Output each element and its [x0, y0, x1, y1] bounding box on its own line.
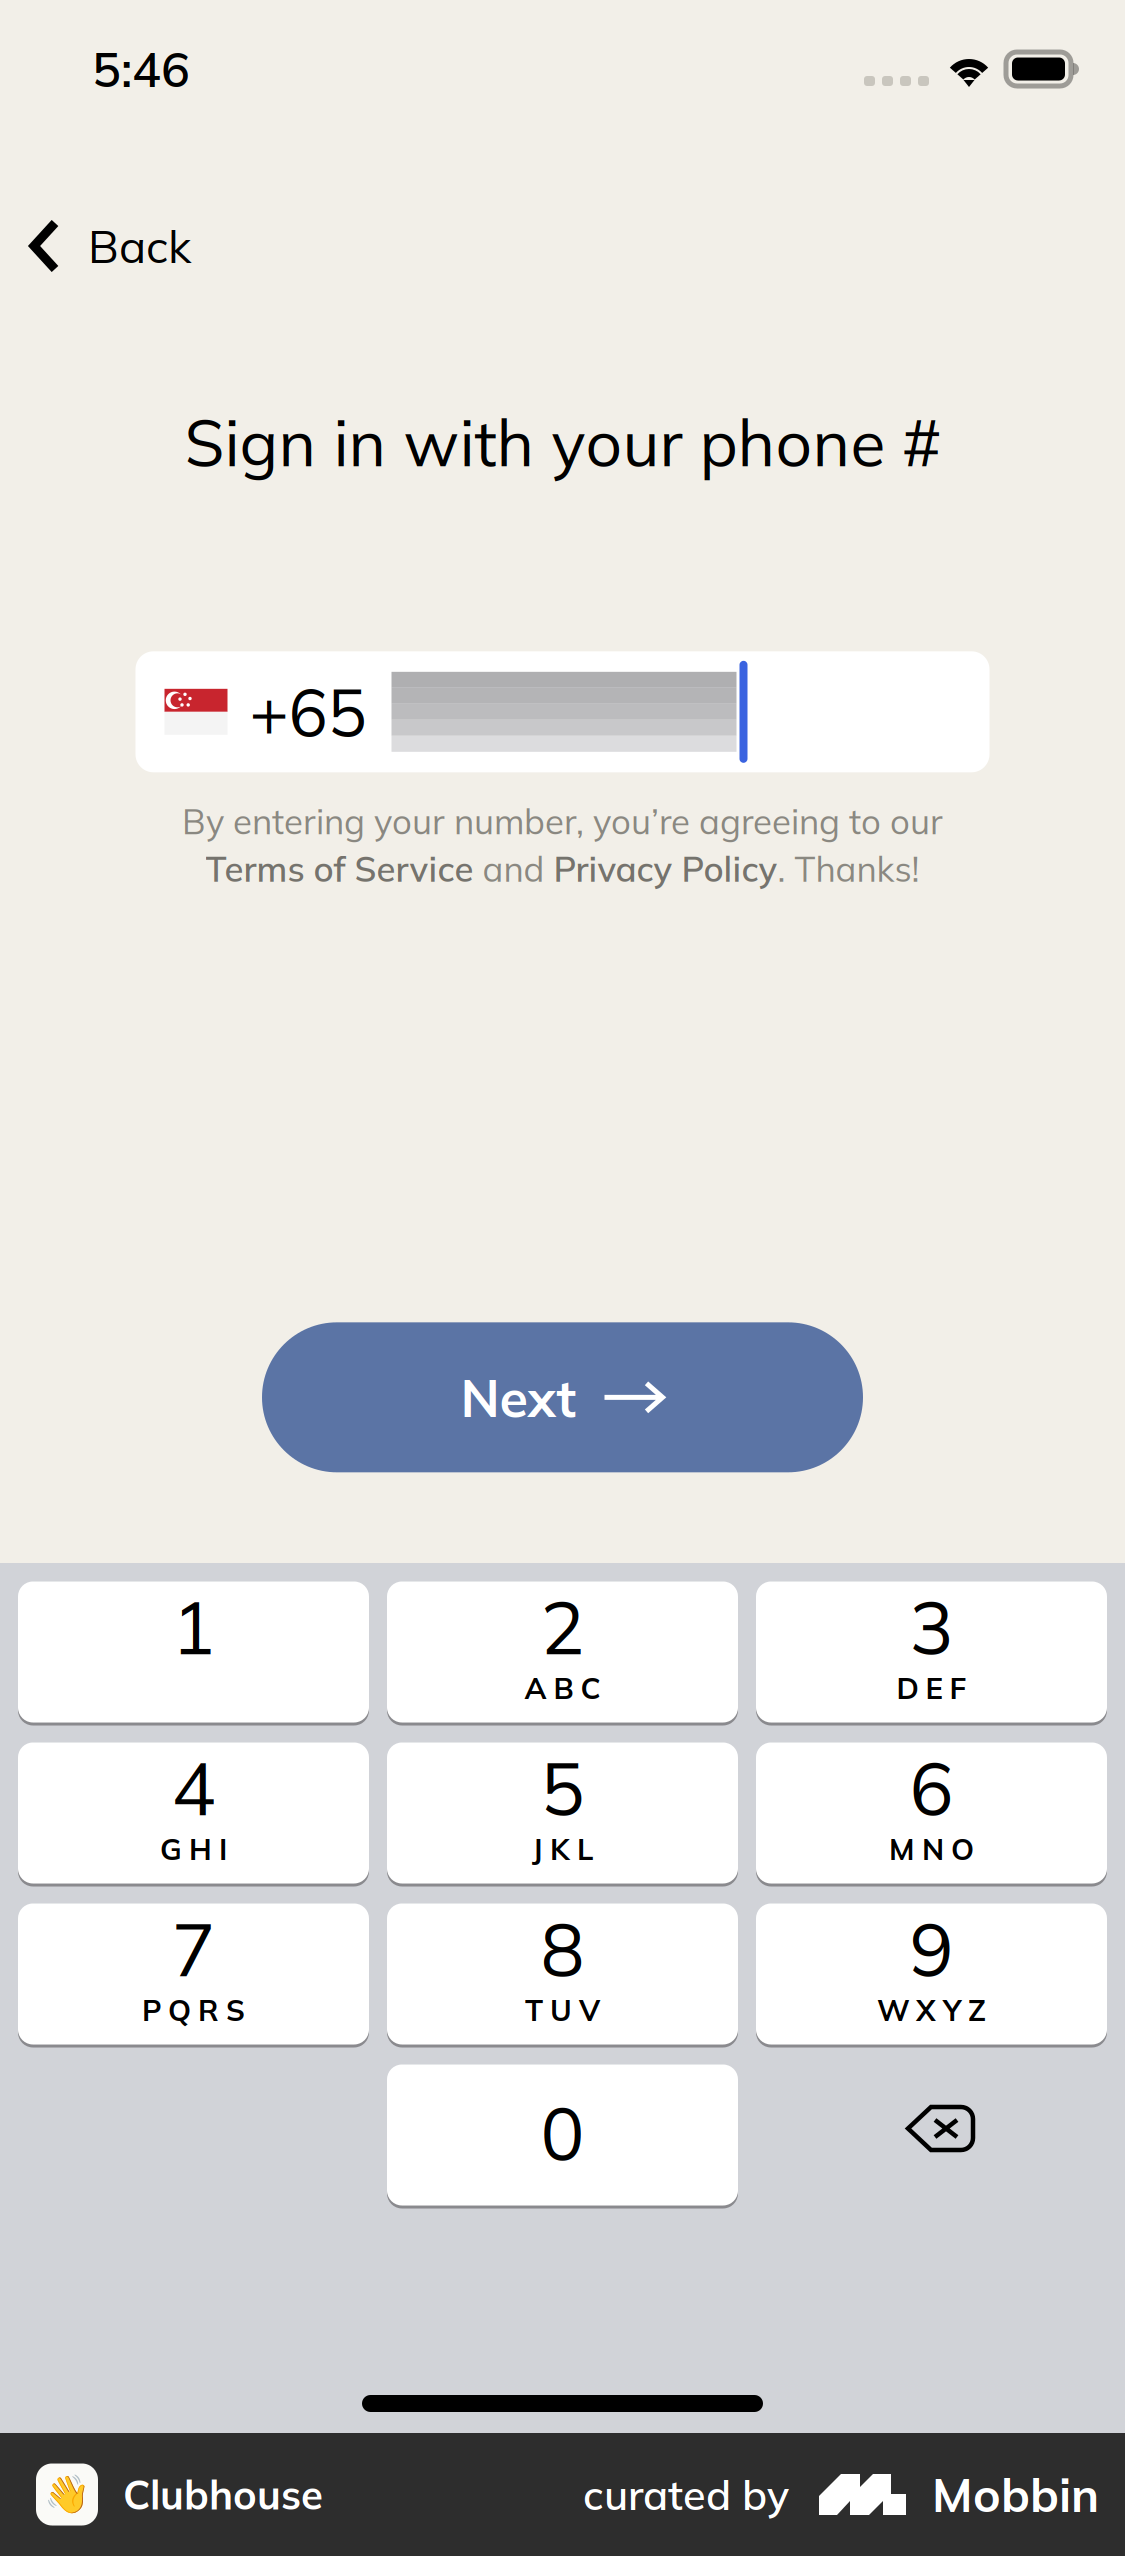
button[interactable]: Back [0, 138, 217, 354]
button[interactable]: 0 [387, 2063, 738, 2207]
button[interactable]: 1 [18, 1580, 369, 1724]
button[interactable]: 4 [18, 1741, 369, 1885]
staticText: Clubhouse [123, 2469, 323, 2520]
button[interactable]: 6 [756, 1741, 1107, 1885]
staticText: Privacy Policy [553, 847, 777, 890]
staticText: 3 [909, 1580, 953, 1672]
staticText: 9 [909, 1902, 953, 1994]
staticText: Terms of Service [205, 847, 473, 890]
staticText: GHI [160, 1830, 227, 1867]
staticText: JKL [532, 1830, 593, 1867]
staticText: Sign in with your phone # [184, 402, 940, 482]
staticText: 6 [909, 1741, 953, 1833]
button[interactable]: 2 [387, 1580, 738, 1724]
staticText: curated by [583, 2469, 789, 2520]
staticText: +65 [249, 671, 366, 753]
button[interactable]: Next [262, 1322, 863, 1472]
staticText: . Thanks! [777, 847, 919, 890]
staticText: ABC [524, 1669, 600, 1706]
staticText: 1 [171, 1580, 215, 1672]
staticText: PQRS [142, 1991, 245, 2028]
staticText: 2 [540, 1580, 584, 1672]
button[interactable]: Delete [756, 2063, 1107, 2207]
staticText: and [473, 847, 553, 890]
button[interactable]: 9 [756, 1902, 1107, 2046]
staticText: 7 [171, 1902, 215, 1994]
staticText: 5 [540, 1741, 584, 1833]
staticText: Back [88, 218, 191, 274]
staticText: 👋 [44, 2473, 90, 2516]
button[interactable]: 8 [387, 1902, 738, 2046]
staticText: 0 [540, 2086, 584, 2178]
staticText: WXYZ [877, 1991, 986, 2028]
button[interactable]: 5 [387, 1741, 738, 1885]
staticText: Next [460, 1365, 576, 1430]
button[interactable]: 3 [756, 1580, 1107, 1724]
staticText: MNO [889, 1830, 974, 1867]
button[interactable]: 7 [18, 1902, 369, 2046]
staticText: 4 [171, 1741, 215, 1833]
staticText: 5:46 [92, 39, 190, 99]
staticText: By entering your number, you’re agreeing… [182, 799, 943, 843]
staticText: Mobbin [932, 2465, 1099, 2524]
staticText: TUV [525, 1991, 600, 2028]
staticText: 8 [540, 1902, 584, 1994]
staticText: DEF [896, 1669, 966, 1706]
